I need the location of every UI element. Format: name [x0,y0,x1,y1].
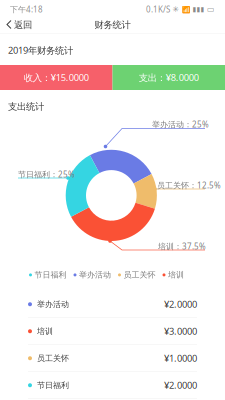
button[interactable]: 举办活动 [28,291,197,318]
staticText: 2019年财务统计 [8,44,73,56]
staticText: ¥3.0000 [164,325,197,337]
staticText: 返回 [14,19,32,31]
staticText: 0.1K/S [146,4,170,15]
staticText: 📶 [182,5,190,13]
staticText: 节日福利：25% [18,169,75,180]
staticText: 举办活动 [37,299,69,309]
button[interactable]: 员工关怀 [28,345,197,372]
staticText: 培训：37.5% [158,241,206,252]
staticText: 收入：¥15.0000 [24,71,89,84]
staticText: 培训 [168,270,184,280]
staticText: ¥1.0000 [164,352,197,364]
staticText: 培训 [37,326,53,336]
staticText: ▮▮▮ [192,5,204,13]
staticText: 举办活动 [79,270,111,280]
staticText: 下午4:18 [10,4,43,15]
button[interactable]: 培训 [28,318,197,345]
staticText: 举办活动：25% [152,119,209,130]
staticText: 员工关怀：12.5% [157,180,221,191]
staticText: 财务统计 [94,19,130,31]
staticText: ¥2.0000 [164,379,197,391]
staticText: 员工关怀 [37,353,69,363]
staticText: 支出：¥8.0000 [139,71,199,84]
staticText: 支出统计 [8,101,44,112]
staticText: ✳ [172,5,179,14]
staticText: ¥2.0000 [164,298,197,310]
button[interactable]: 节日福利 [28,372,197,399]
staticText: ▭ [207,5,215,14]
staticText: 节日福利 [34,270,66,280]
button[interactable]: 返回 [1,15,38,35]
staticText: 节日福利 [37,380,69,390]
staticText: 员工关怀 [123,270,155,280]
